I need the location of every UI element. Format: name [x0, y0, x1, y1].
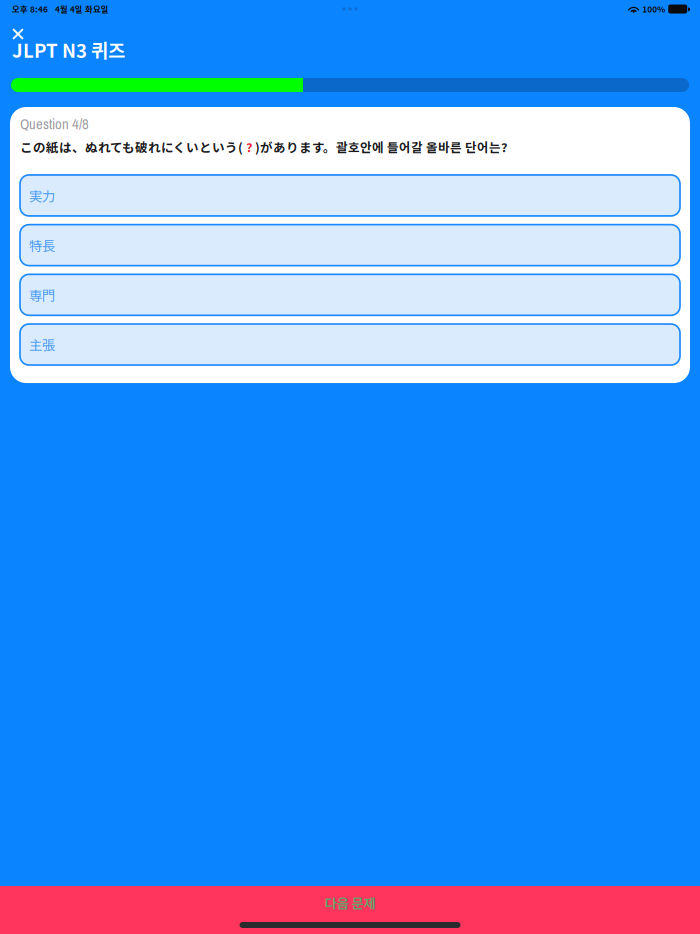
- staticText: 専門: [29, 285, 55, 304]
- staticText: 4월 4일 화요일: [55, 3, 109, 15]
- staticText: 実力: [29, 186, 55, 205]
- staticText: 100%: [642, 3, 665, 15]
- button[interactable]: 実力: [20, 175, 680, 216]
- staticText: この紙は、ぬれても破れにくいという(: [20, 138, 246, 156]
- button[interactable]: 特長: [20, 225, 680, 266]
- button[interactable]: 다음 문제: [0, 886, 700, 934]
- staticText: JLPT N3 퀴즈: [12, 36, 125, 63]
- staticText: 特長: [29, 235, 55, 255]
- button[interactable]: 主張: [20, 324, 680, 365]
- staticText: 다음 문제: [324, 893, 375, 912]
- staticText: ?: [246, 138, 252, 156]
- button[interactable]: 専門: [20, 274, 680, 315]
- staticText: 오후 8:46: [12, 3, 48, 15]
- staticText: )があります。괄호안에 들어갈 올바른 단어는?: [252, 138, 507, 156]
- staticText: 主張: [29, 335, 55, 354]
- staticText: Question 4/8: [20, 114, 89, 134]
- button[interactable]: Close: [0, 25, 34, 43]
